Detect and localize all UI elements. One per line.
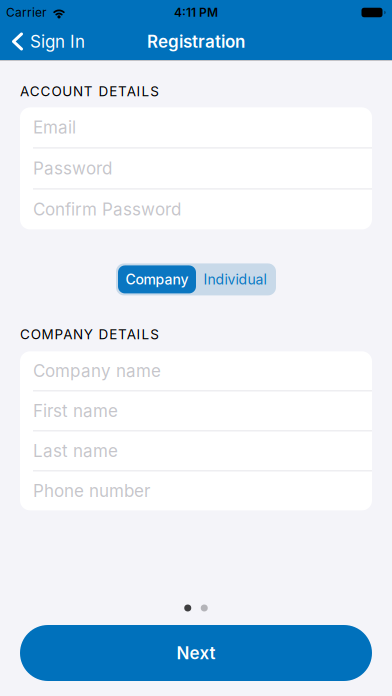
staticText: Password: [33, 158, 112, 178]
staticText: ACCOUNT DETAILS: [20, 83, 159, 99]
button[interactable]: Back to Sign In: [0, 31, 85, 52]
staticText: Carrier: [6, 5, 47, 20]
button[interactable]: Password: [20, 148, 372, 188]
staticText: Last name: [33, 441, 118, 461]
button[interactable]: Next: [20, 625, 372, 681]
button[interactable]: Company: [118, 265, 196, 293]
button[interactable]: Email: [20, 107, 372, 147]
staticText: Sign In: [30, 31, 85, 52]
button[interactable]: Phone number: [20, 471, 372, 510]
staticText: Email: [33, 117, 76, 137]
staticText: 4:11 PM: [174, 5, 218, 20]
staticText: Next: [176, 643, 215, 663]
staticText: Company name: [33, 361, 161, 381]
staticText: Phone number: [33, 481, 150, 501]
staticText: Registration: [147, 31, 245, 52]
button[interactable]: Last name: [20, 431, 372, 470]
staticText: Individual: [203, 271, 266, 288]
button[interactable]: First name: [20, 391, 372, 430]
staticText: Confirm Password: [33, 199, 181, 219]
staticText: Company: [125, 271, 188, 288]
staticText: COMPANY DETAILS: [20, 326, 159, 342]
button[interactable]: Individual: [196, 265, 274, 293]
button[interactable]: Confirm Password: [20, 189, 372, 229]
staticText: First name: [33, 401, 118, 421]
button[interactable]: Page 1 of 2: [184, 604, 208, 611]
button[interactable]: Company name: [20, 351, 372, 390]
